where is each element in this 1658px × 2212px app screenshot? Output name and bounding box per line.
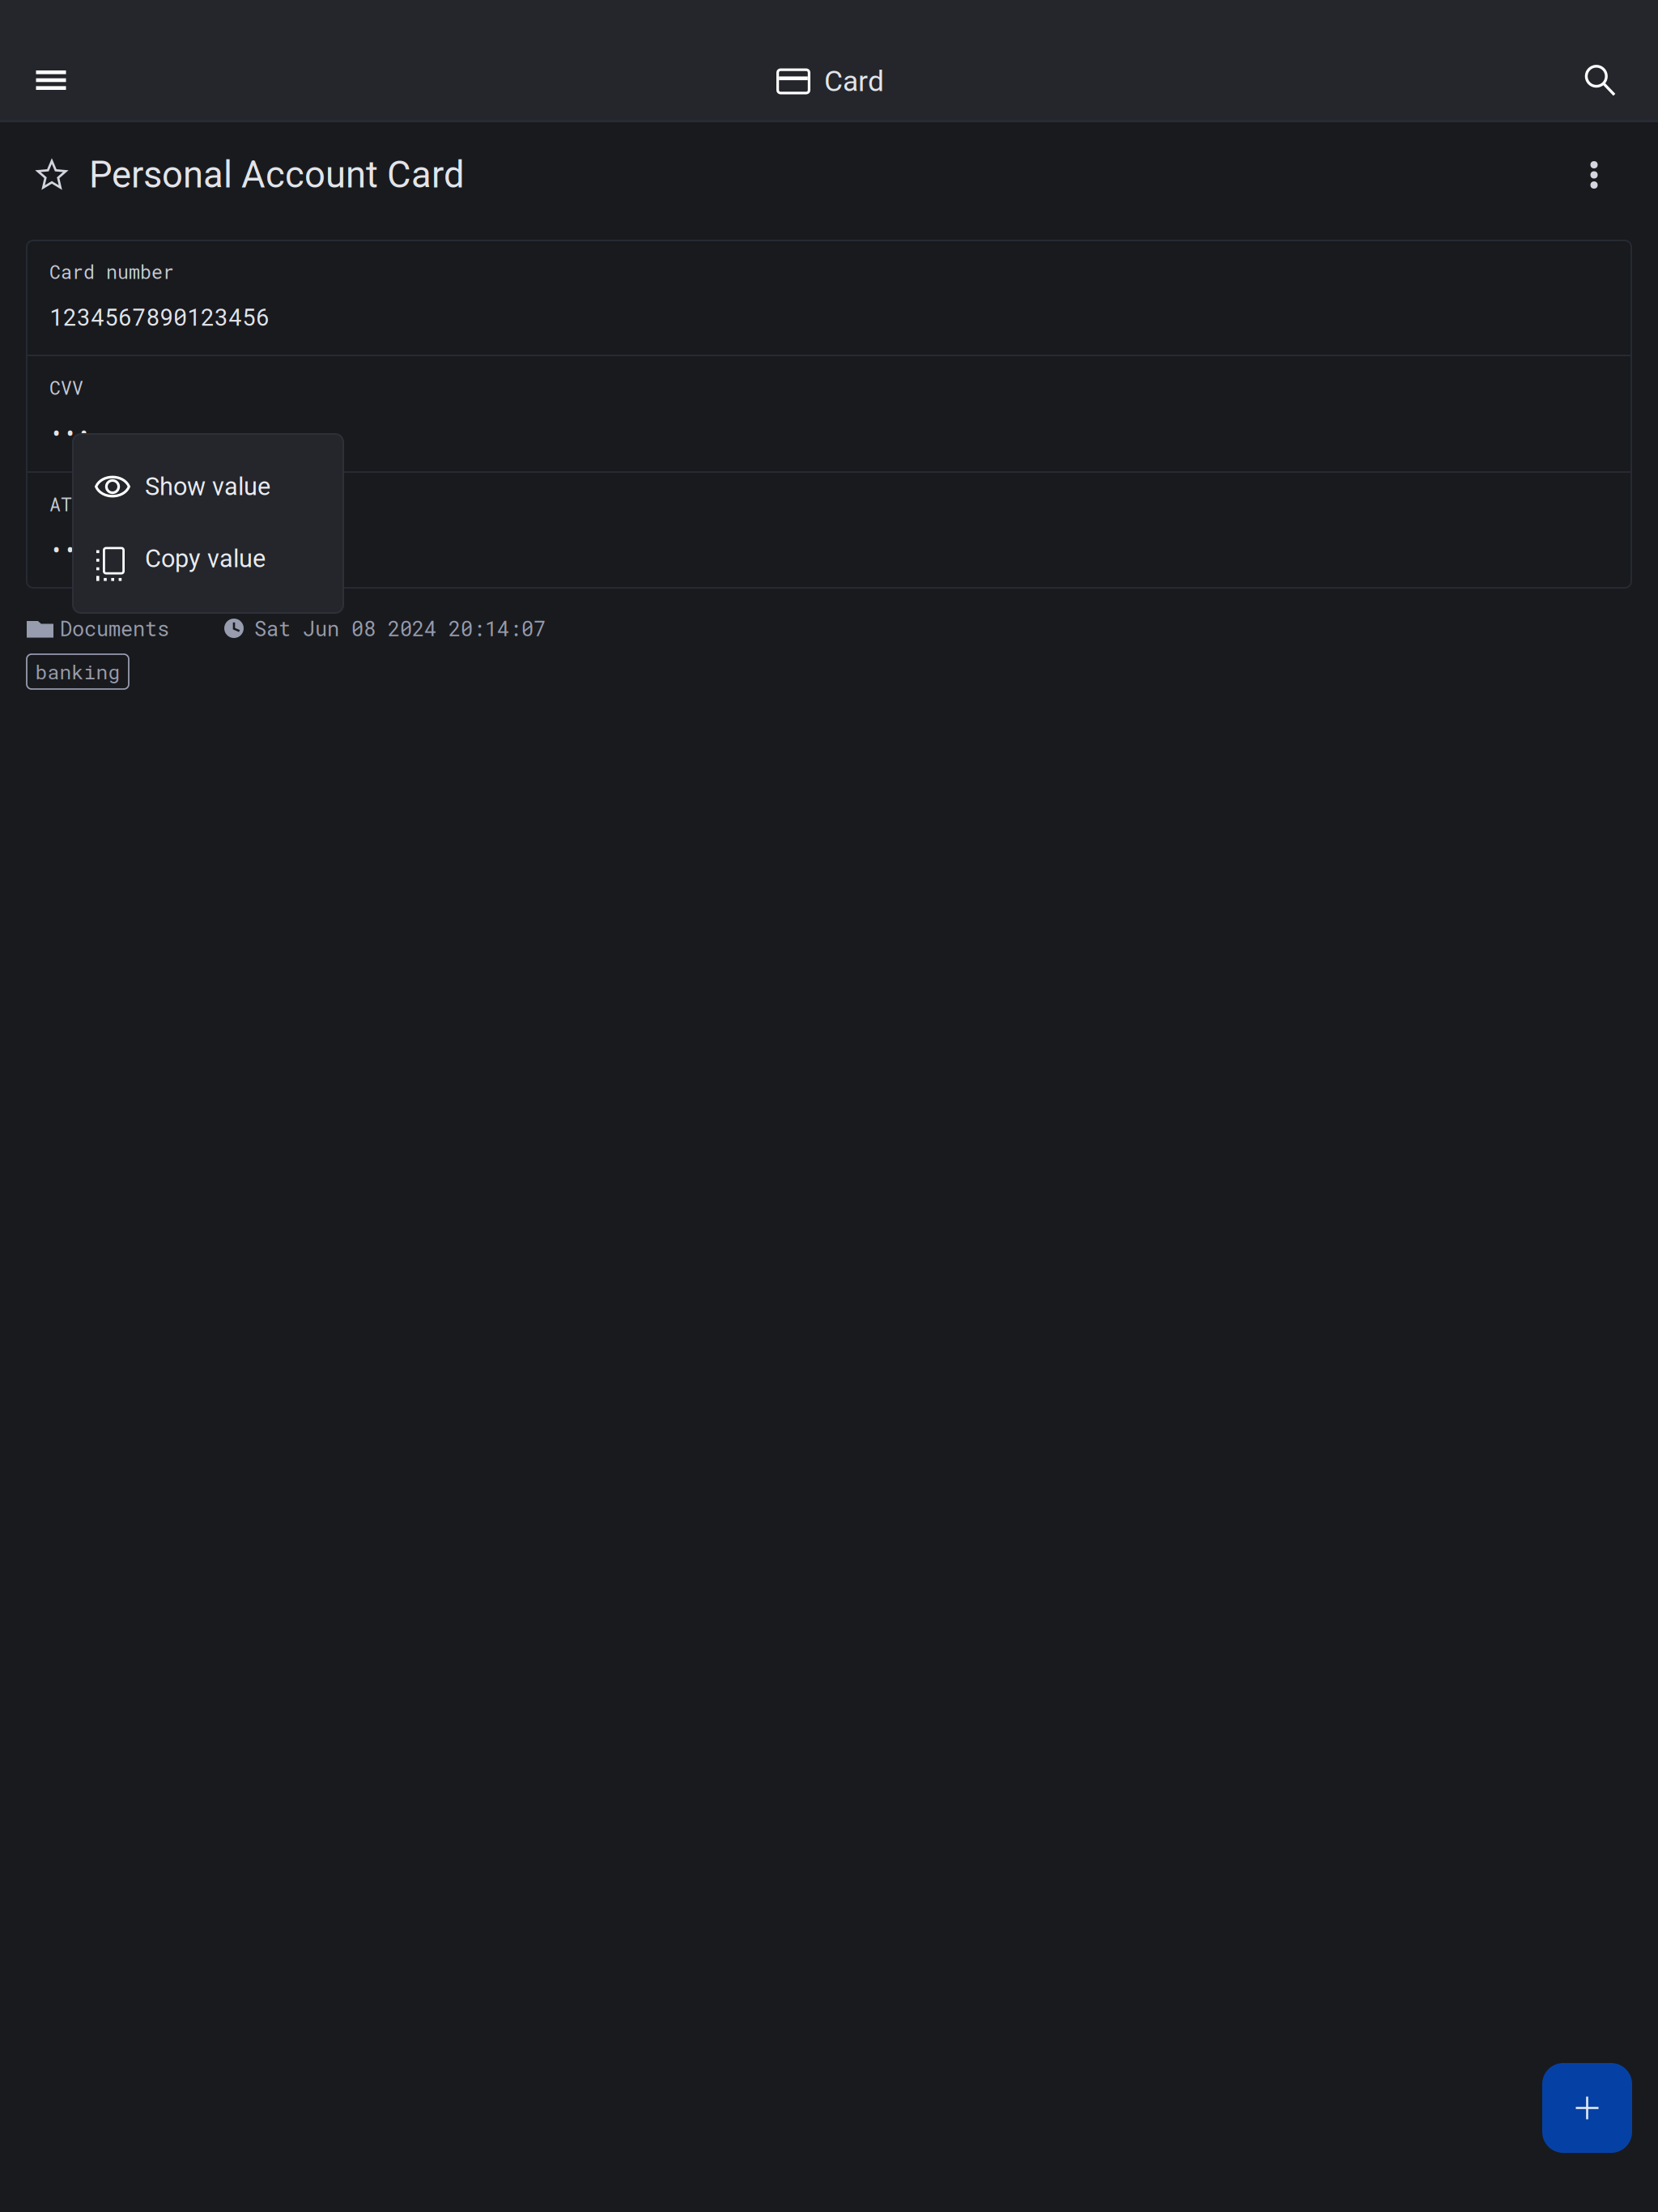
button[interactable]: banking	[27, 654, 129, 689]
staticText: ••••	[49, 535, 104, 565]
button[interactable]: More options	[1558, 139, 1630, 211]
staticText: 1234567890123456	[49, 301, 270, 332]
button[interactable]: Search	[1560, 40, 1639, 120]
button[interactable]: Add item	[1542, 2063, 1632, 2153]
staticText: Documents	[60, 615, 169, 642]
button[interactable]: CVV	[27, 356, 1631, 471]
staticText: Card	[824, 65, 884, 98]
staticText: •••	[49, 418, 91, 449]
button[interactable]: Show value	[73, 450, 343, 523]
button[interactable]: Card number	[27, 240, 1631, 355]
button[interactable]: Copy value	[73, 523, 343, 596]
staticText: banking	[35, 658, 120, 685]
staticText: Personal Account Card	[89, 153, 465, 196]
staticText: ATM PIN	[49, 491, 129, 516]
button[interactable]: ATM PIN	[27, 473, 1631, 588]
staticText: Copy value	[145, 544, 266, 573]
button[interactable]: Menu	[11, 40, 91, 120]
staticText: Sat Jun 08 2024 20:14:07	[254, 615, 546, 642]
staticText: Card number	[49, 259, 174, 284]
button[interactable]: Favorite	[16, 139, 87, 211]
staticText: CVV	[49, 375, 83, 400]
staticText: Show value	[145, 472, 270, 501]
